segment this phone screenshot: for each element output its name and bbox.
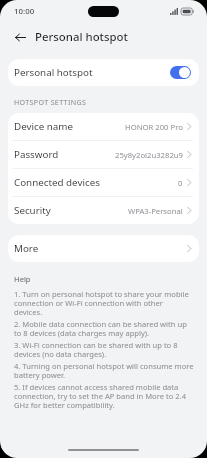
staticText: 4. Turning on personal hotspot will cons… bbox=[14, 361, 194, 380]
staticText: 1. Turn on personal hotspot to share you… bbox=[14, 289, 189, 317]
button[interactable]: Personal hotspot bbox=[8, 59, 199, 86]
button[interactable]: More bbox=[8, 235, 199, 262]
staticText: 5. If devices cannot access shared mobil… bbox=[14, 382, 186, 410]
button[interactable]: Security bbox=[8, 197, 199, 224]
staticText: Personal hotspot bbox=[14, 66, 93, 79]
staticText: Help bbox=[14, 274, 31, 284]
button[interactable]: Personal hotspot toggle bbox=[170, 66, 191, 79]
staticText: Connected devices bbox=[14, 176, 100, 189]
staticText: 2. Mobile data connection can be shared … bbox=[14, 319, 187, 338]
staticText: HONOR 200 Pro bbox=[125, 122, 183, 132]
staticText: Personal hotspot bbox=[35, 29, 128, 45]
button[interactable]: Connected devices bbox=[8, 169, 199, 196]
staticText: HOTSPOT SETTINGS bbox=[14, 97, 87, 107]
button[interactable]: Password bbox=[8, 141, 199, 168]
staticText: 3. Wi-Fi connection can be shared with u… bbox=[14, 340, 178, 359]
staticText: 10:00 bbox=[14, 6, 35, 17]
button[interactable]: Back bbox=[13, 30, 27, 44]
staticText: 0 bbox=[178, 178, 183, 188]
staticText: More bbox=[14, 242, 39, 255]
staticText: Device name bbox=[14, 120, 73, 133]
staticText: Password bbox=[14, 148, 59, 161]
staticText: 25y8y2oi2u3282u9 bbox=[115, 150, 183, 160]
staticText: Security bbox=[14, 204, 51, 217]
button[interactable]: Device name bbox=[8, 113, 199, 140]
staticText: WPA3-Personal bbox=[128, 206, 183, 216]
